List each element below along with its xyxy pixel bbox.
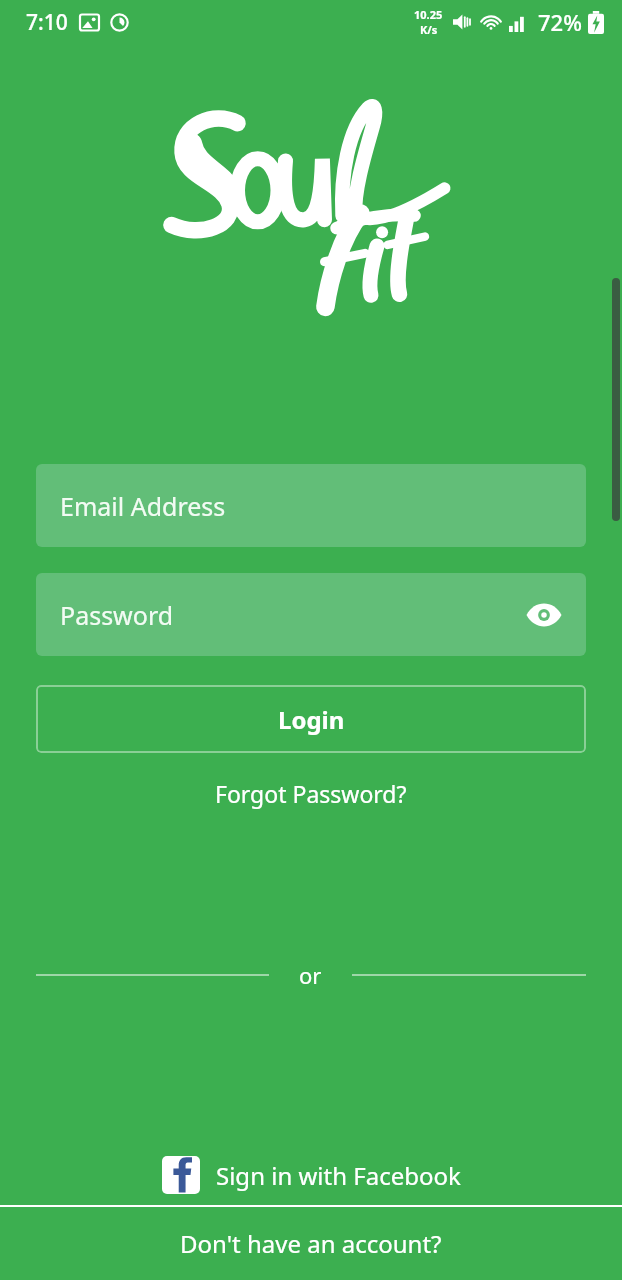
staticText: Password bbox=[60, 598, 174, 632]
button[interactable]: Show password bbox=[518, 589, 570, 641]
button[interactable]: Login bbox=[36, 685, 586, 753]
button[interactable]: Forgot Password? bbox=[0, 767, 622, 819]
button[interactable]: Email Address bbox=[36, 464, 586, 547]
staticText: Don't have an account? bbox=[180, 1227, 442, 1260]
button[interactable]: Sign in with Facebook bbox=[0, 1145, 622, 1205]
staticText: Forgot Password? bbox=[215, 778, 407, 809]
staticText: K/s bbox=[420, 22, 438, 37]
staticText: or bbox=[299, 960, 322, 990]
staticText: Email Address bbox=[60, 489, 226, 523]
button[interactable]: Password bbox=[36, 573, 586, 656]
staticText: 7:10 bbox=[26, 8, 68, 37]
staticText: Login bbox=[278, 703, 345, 736]
staticText: 72% bbox=[538, 7, 582, 37]
button[interactable]: Don't have an account? bbox=[0, 1207, 622, 1280]
staticText: Sign in with Facebook bbox=[216, 1159, 461, 1192]
staticText: 10.25 bbox=[414, 7, 443, 22]
